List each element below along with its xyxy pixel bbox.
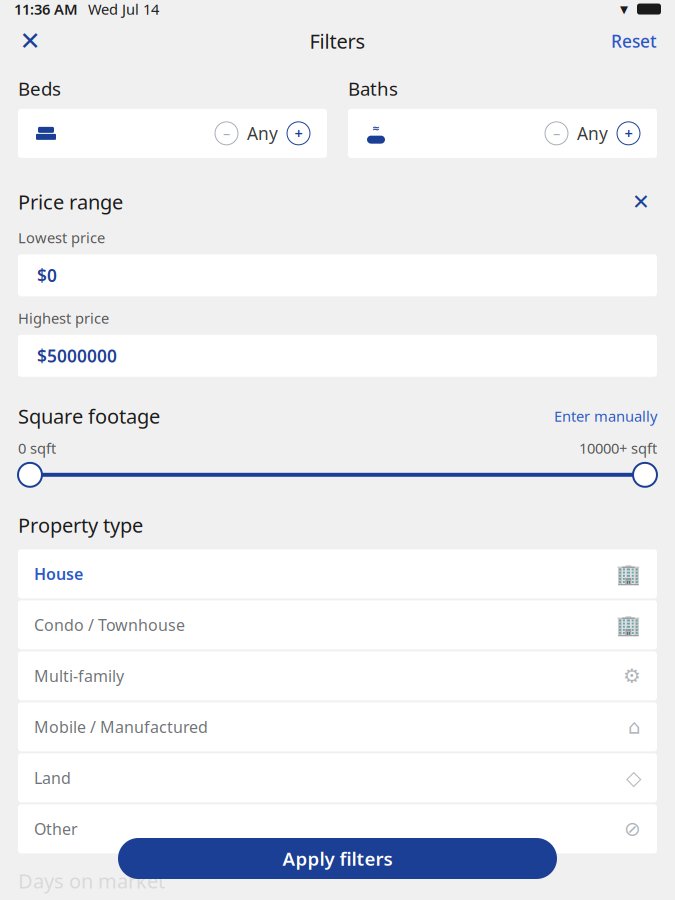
staticText: – xyxy=(223,124,230,143)
staticText: ≈ xyxy=(372,123,380,134)
staticText: Reset xyxy=(611,29,657,52)
staticText: – xyxy=(553,124,560,143)
staticText: Any xyxy=(247,122,278,145)
button[interactable]: Multi-family xyxy=(18,651,657,700)
staticText: Condo / Townhouse xyxy=(34,614,185,635)
staticText: 🏢 xyxy=(616,613,641,636)
button[interactable]: Increase xyxy=(287,122,310,145)
staticText: + xyxy=(624,124,632,143)
staticText: Other xyxy=(34,818,78,839)
staticText: ▾ xyxy=(620,0,628,18)
staticText: 11:36 AM xyxy=(14,0,78,19)
button[interactable]: Land xyxy=(18,753,657,802)
button[interactable]: Condo / Townhouse xyxy=(18,600,657,649)
button[interactable]: Other xyxy=(18,804,657,853)
staticText: 0 sqft xyxy=(18,438,56,458)
button[interactable]: House xyxy=(18,549,657,598)
staticText: Filters xyxy=(309,28,365,54)
staticText: $5000000 xyxy=(37,344,117,367)
staticText: 🏢 xyxy=(616,562,641,585)
staticText: Lowest price xyxy=(18,228,105,247)
staticText: Property type xyxy=(18,512,143,538)
staticText: Multi-family xyxy=(34,665,124,686)
staticText: Days on market xyxy=(18,867,165,894)
button[interactable]: Close xyxy=(8,21,52,61)
staticText: Highest price xyxy=(18,308,109,328)
staticText: Wed Jul 14 xyxy=(88,0,159,19)
staticText: Beds xyxy=(18,76,61,101)
button[interactable]: Mobile / Manufactured xyxy=(18,702,657,751)
staticText: + xyxy=(294,124,302,143)
staticText: 10000+ sqft xyxy=(579,438,657,458)
button[interactable]: Reset xyxy=(601,21,667,61)
button[interactable]: Decrease xyxy=(215,122,238,145)
staticText: Enter manually xyxy=(554,406,657,426)
staticText: ⊘ xyxy=(624,817,641,840)
staticText: ✕ xyxy=(19,27,40,55)
button[interactable]: $0 xyxy=(18,254,657,296)
staticText: ⌂ xyxy=(628,715,641,738)
staticText: ✕ xyxy=(632,190,650,214)
staticText: Square footage xyxy=(18,403,160,429)
button[interactable]: Increase xyxy=(617,122,640,145)
staticText: ⚙ xyxy=(623,664,641,687)
staticText: ◇ xyxy=(626,766,641,789)
staticText: House xyxy=(34,563,83,584)
staticText: $0 xyxy=(37,264,57,287)
button[interactable]: Decrease xyxy=(545,122,568,145)
staticText: Any xyxy=(577,122,608,145)
button[interactable]: Enter manually xyxy=(554,406,657,426)
button[interactable]: Apply filters xyxy=(118,838,557,879)
button[interactable]: Clear price range xyxy=(625,188,657,216)
staticText: Baths xyxy=(348,76,398,101)
staticText: Mobile / Manufactured xyxy=(34,716,208,737)
staticText: Land xyxy=(34,767,71,788)
staticText: Price range xyxy=(18,189,123,215)
staticText: Apply filters xyxy=(282,846,392,871)
button[interactable]: $5000000 xyxy=(18,335,657,377)
